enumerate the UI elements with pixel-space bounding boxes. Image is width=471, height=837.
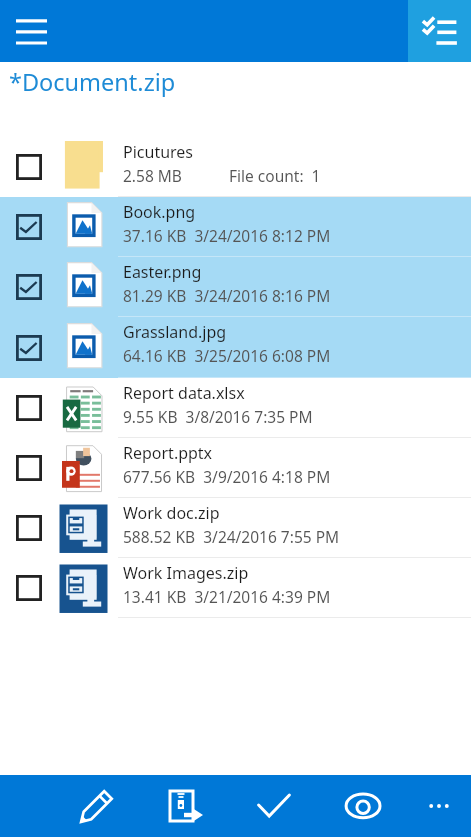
staticText: Work doc.zip	[123, 502, 220, 524]
button[interactable]: Picutures	[0, 137, 471, 197]
staticText: Easter.png	[123, 261, 202, 283]
staticText: 64.16 KB 3/25/2016 6:08 PM	[123, 345, 331, 366]
staticText: Report.pptx	[123, 442, 213, 464]
button[interactable]: Book.png	[0, 197, 471, 257]
staticText: *Document.zip	[9, 66, 176, 98]
staticText: 677.56 KB 3/9/2016 4:18 PM	[123, 466, 331, 487]
button[interactable]: Edit	[53, 775, 141, 837]
button[interactable]: Extract	[141, 775, 229, 837]
staticText: Report data.xlsx	[123, 382, 245, 404]
staticText: 2.58 MB	[123, 165, 182, 186]
button[interactable]: Select all	[408, 0, 471, 62]
staticText: File count: 1	[229, 165, 321, 186]
button[interactable]: Confirm	[229, 775, 318, 837]
button[interactable]: Work Images.zip	[0, 558, 471, 618]
staticText: 37.16 KB 3/24/2016 8:12 PM	[123, 225, 331, 246]
staticText: Book.png	[123, 201, 196, 223]
staticText: Picutures	[123, 141, 194, 163]
staticText: 9.55 KB 3/8/2016 7:35 PM	[123, 406, 313, 427]
button[interactable]: Grassland.jpg	[0, 317, 471, 378]
button[interactable]: More	[407, 775, 471, 837]
button[interactable]: Easter.png	[0, 257, 471, 317]
button[interactable]: View	[318, 775, 407, 837]
button[interactable]: Work doc.zip	[0, 498, 471, 558]
button[interactable]: Report data.xlsx	[0, 378, 471, 438]
staticText: Grassland.jpg	[123, 321, 227, 343]
button[interactable]: Report.pptx	[0, 438, 471, 498]
button[interactable]: Menu	[0, 0, 62, 62]
staticText: Work Images.zip	[123, 562, 249, 584]
staticText: 81.29 KB 3/24/2016 8:16 PM	[123, 285, 331, 306]
staticText: 588.52 KB 3/24/2016 7:55 PM	[123, 526, 340, 547]
staticText: 13.41 KB 3/21/2016 4:39 PM	[123, 586, 331, 607]
